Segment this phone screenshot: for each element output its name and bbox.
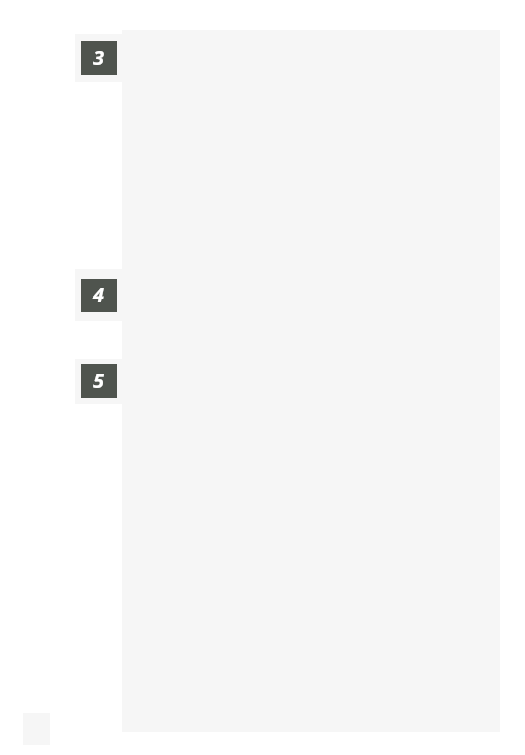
staticText: 4 <box>93 281 105 308</box>
button[interactable]: Step 4 <box>81 279 117 312</box>
staticText: 3 <box>93 44 105 71</box>
button[interactable]: Step 3 <box>81 41 117 75</box>
staticText: 5 <box>93 367 105 394</box>
button[interactable]: Step 5 <box>81 364 117 398</box>
